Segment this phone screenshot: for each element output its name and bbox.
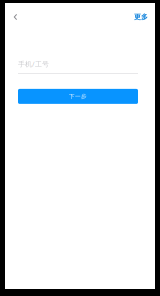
staticText: 手机/工号 xyxy=(18,59,49,69)
button[interactable]: 下一步 xyxy=(18,89,138,104)
button[interactable]: 更多 xyxy=(134,9,148,25)
button[interactable]: Back xyxy=(9,9,22,25)
staticText: 更多 xyxy=(134,13,148,21)
staticText: 下一步 xyxy=(69,93,87,100)
button[interactable]: 手机/工号 xyxy=(18,60,138,74)
